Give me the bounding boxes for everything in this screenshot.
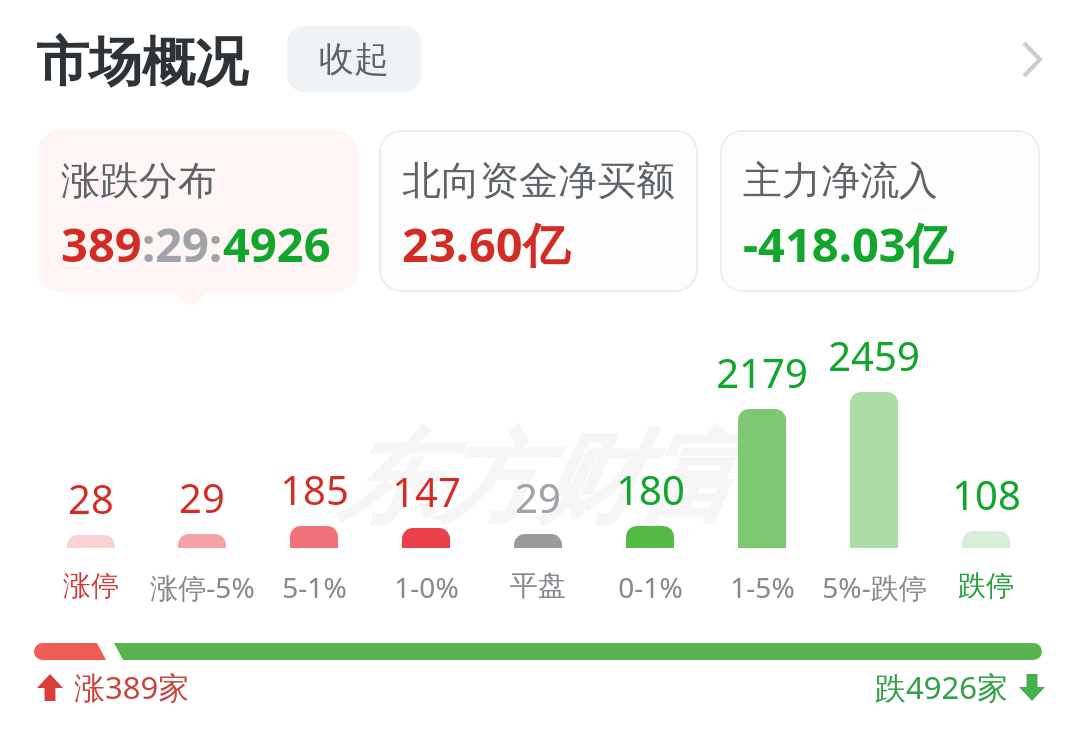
button[interactable] bbox=[738, 409, 786, 548]
staticText: 0-1% bbox=[618, 568, 683, 606]
staticText: 平盘 bbox=[510, 568, 566, 603]
staticText: 29 bbox=[515, 470, 561, 524]
staticText: :29: bbox=[142, 212, 223, 276]
staticText: 4926 bbox=[223, 212, 331, 276]
staticText: 1-5% bbox=[730, 568, 795, 606]
staticText: 23.60亿 bbox=[402, 212, 570, 276]
staticText: 2459 bbox=[828, 328, 920, 382]
staticText: 147 bbox=[392, 464, 461, 518]
staticText: 涨389家 bbox=[74, 666, 190, 708]
staticText: 1-0% bbox=[394, 568, 459, 606]
button[interactable]: 展开更多 bbox=[1004, 26, 1060, 92]
button[interactable]: 涨389家 bbox=[37, 666, 190, 708]
staticText: 跌停 bbox=[958, 568, 1014, 603]
staticText: 涨停 bbox=[63, 568, 119, 603]
button[interactable]: 跌4926家 bbox=[875, 666, 1045, 708]
button[interactable]: 收起 bbox=[287, 26, 421, 92]
button[interactable] bbox=[290, 526, 338, 548]
button[interactable] bbox=[720, 130, 1040, 292]
button[interactable] bbox=[178, 534, 226, 548]
staticText: 主力净流入 bbox=[743, 156, 938, 205]
staticText: 28 bbox=[68, 471, 114, 525]
button[interactable] bbox=[626, 526, 674, 548]
button[interactable] bbox=[402, 528, 450, 548]
button[interactable] bbox=[67, 535, 115, 548]
staticText: 涨停-5% bbox=[150, 568, 255, 606]
staticText: 5-1% bbox=[282, 568, 347, 606]
staticText: 涨跌分布 bbox=[61, 156, 217, 205]
staticText: 29 bbox=[179, 470, 225, 524]
staticText: 5%-跌停 bbox=[822, 568, 927, 606]
staticText: 北向资金净买额 bbox=[402, 156, 675, 205]
staticText: 185 bbox=[280, 462, 349, 516]
button[interactable] bbox=[379, 130, 698, 292]
staticText: 东方财富 bbox=[337, 417, 737, 543]
staticText: 市场概况 bbox=[36, 29, 248, 96]
staticText: -418.03亿 bbox=[743, 212, 953, 276]
button[interactable] bbox=[38, 130, 358, 292]
button[interactable] bbox=[514, 534, 562, 548]
button[interactable] bbox=[850, 392, 898, 548]
staticText: 2179 bbox=[716, 345, 808, 399]
staticText: 389 bbox=[61, 212, 142, 276]
staticText: 108 bbox=[952, 467, 1021, 521]
button[interactable] bbox=[962, 531, 1010, 548]
staticText: 跌4926家 bbox=[875, 666, 1008, 708]
staticText: 收起 bbox=[319, 37, 389, 81]
staticText: 180 bbox=[616, 462, 685, 516]
